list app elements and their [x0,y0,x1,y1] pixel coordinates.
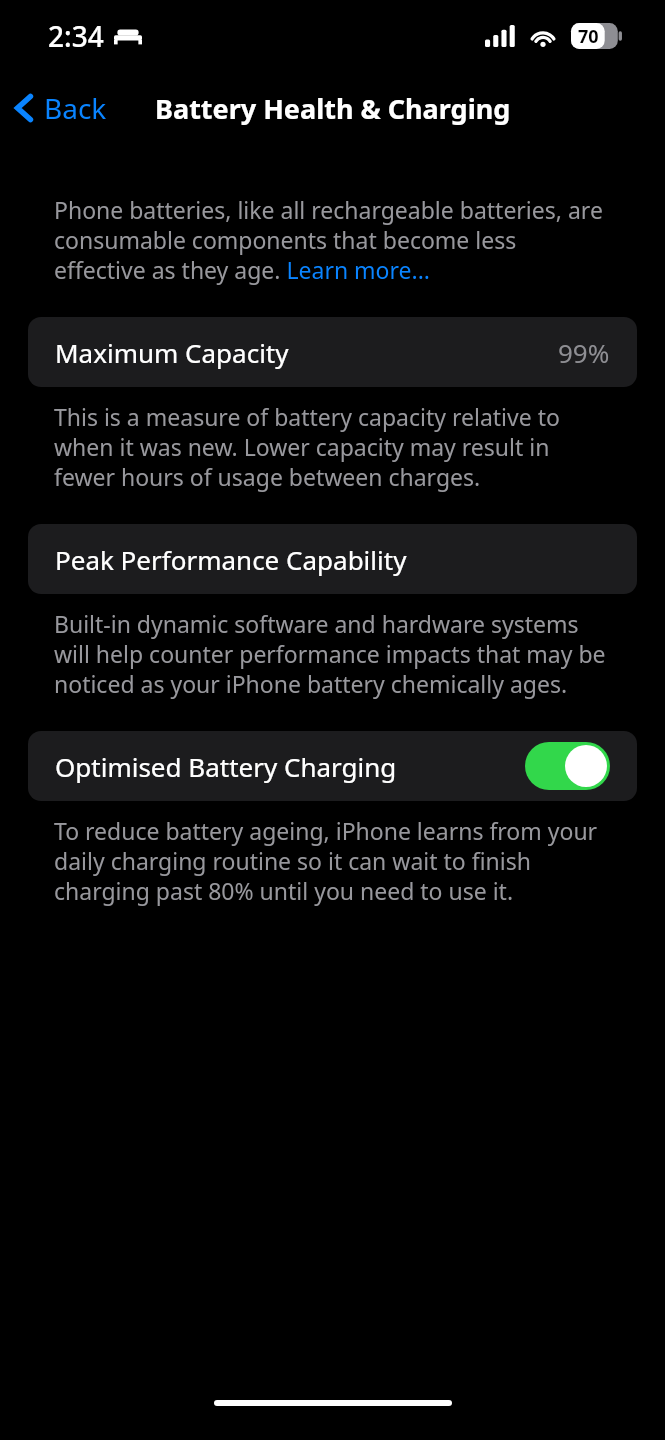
staticText: Built-in dynamic software and hardware s… [54,608,611,699]
staticText: This is a measure of battery capacity re… [54,401,611,492]
button[interactable]: Optimised Battery Charging [28,731,637,801]
button[interactable]: Maximum Capacity [28,317,637,387]
button[interactable]: Optimised Battery Charging toggle, on [525,742,610,790]
button[interactable]: Back [0,83,119,133]
staticText: Phone batteries, like all rechargeable b… [54,194,611,285]
staticText: Back [44,89,107,127]
button[interactable]: Peak Performance Capability [28,524,637,594]
staticText: Battery Health & Charging [155,90,511,127]
staticText: Optimised Battery Charging [55,749,397,784]
staticText: 99% [558,335,610,370]
staticText: Peak Performance Capability [55,542,407,577]
staticText: 2:34 [48,17,104,55]
staticText: 70 [578,24,599,49]
staticText: Maximum Capacity [55,335,289,370]
staticText: To reduce battery ageing, iPhone learns … [54,815,611,906]
